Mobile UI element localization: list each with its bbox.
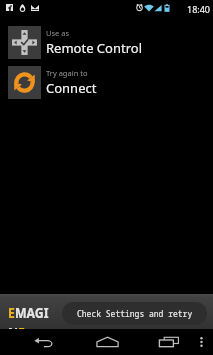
button[interactable]: Use as bbox=[0, 26, 213, 59]
staticText: 18:40 bbox=[187, 3, 211, 15]
button[interactable]: Check Settings and retry bbox=[62, 302, 207, 325]
button[interactable]: Try again to bbox=[0, 66, 213, 99]
staticText: Use as bbox=[46, 28, 70, 38]
staticText: Check Settings and retry bbox=[77, 308, 193, 319]
staticText: Remote Control bbox=[46, 39, 142, 57]
staticText: EMAGINE bbox=[8, 302, 54, 337]
staticText: Connect bbox=[46, 79, 97, 97]
button[interactable]: Back bbox=[24, 329, 62, 355]
staticText: Try again to bbox=[46, 68, 88, 78]
button[interactable]: EMAGINE bbox=[3, 302, 59, 337]
button[interactable]: Recent apps bbox=[150, 329, 188, 355]
button[interactable]: More options bbox=[190, 329, 213, 355]
button[interactable]: Home bbox=[88, 329, 126, 355]
